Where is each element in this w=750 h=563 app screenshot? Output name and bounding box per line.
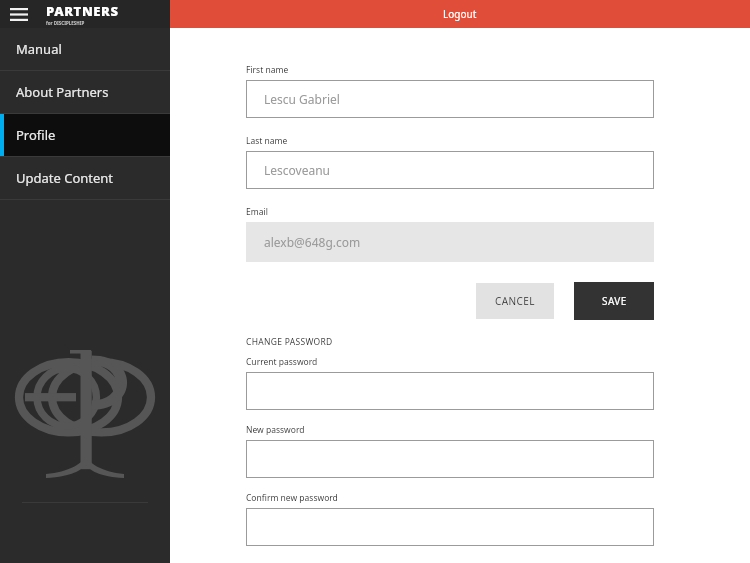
button[interactable]: Manual xyxy=(0,28,170,70)
staticText: First name xyxy=(246,64,289,76)
staticText: CHANGE PASSWORD xyxy=(246,336,333,348)
staticText: Lescu Gabriel xyxy=(264,91,340,107)
staticText: Manual xyxy=(16,40,62,58)
staticText: for DISCIPLESHIP xyxy=(46,20,85,26)
staticText: Lescoveanu xyxy=(264,162,331,178)
staticText: Update Content xyxy=(16,169,114,187)
staticText: SAVE xyxy=(602,294,627,308)
staticText: PARTNERS xyxy=(46,2,119,20)
button[interactable]: Menu xyxy=(0,0,170,28)
button[interactable]: Lescu Gabriel xyxy=(246,80,654,118)
button[interactable]: SAVE xyxy=(574,282,654,320)
staticText: About Partners xyxy=(16,83,109,101)
staticText: alexb@648g.com xyxy=(264,234,361,250)
button[interactable] xyxy=(246,440,654,478)
staticText: Email xyxy=(246,206,268,218)
button[interactable]: About Partners xyxy=(0,71,170,113)
button[interactable]: Lescoveanu xyxy=(246,151,654,189)
staticText: Confirm new password xyxy=(246,492,338,504)
staticText: Current password xyxy=(246,356,318,368)
staticText: Logout xyxy=(443,7,477,21)
button[interactable]: Profile xyxy=(0,114,170,156)
button[interactable]: Update Content xyxy=(0,157,170,199)
button[interactable] xyxy=(246,508,654,546)
staticText: CANCEL xyxy=(495,294,535,308)
staticText: Last name xyxy=(246,135,288,147)
staticText: Profile xyxy=(16,126,56,144)
button[interactable]: CANCEL xyxy=(476,283,554,319)
staticText: New password xyxy=(246,424,305,436)
button[interactable]: Logout xyxy=(170,0,750,28)
button[interactable] xyxy=(246,372,654,410)
